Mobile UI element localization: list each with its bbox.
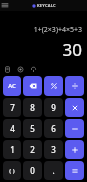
staticText: 0 <box>30 165 35 176</box>
button[interactable]: Percent <box>44 76 63 96</box>
button[interactable]: Multiply <box>65 98 84 117</box>
staticText: 6 <box>51 123 56 134</box>
button[interactable]: ( ) <box>3 161 21 180</box>
button[interactable]: Settings <box>29 65 38 74</box>
staticText: ( ) <box>9 167 15 175</box>
button[interactable]: Divide <box>65 76 84 96</box>
button[interactable]: . <box>44 161 63 180</box>
staticText: 30 <box>62 38 82 61</box>
button[interactable]: 4 <box>3 119 21 138</box>
button[interactable]: 1 <box>3 140 21 159</box>
staticText: 2 <box>30 144 35 155</box>
staticText: 1 <box>10 144 15 155</box>
button[interactable]: 7 <box>3 98 21 117</box>
staticText: 3 <box>51 144 56 155</box>
button[interactable]: 9 <box>44 98 63 117</box>
button[interactable]: History <box>3 65 12 74</box>
staticText: 1+(2×3)+4×5+3 <box>33 25 82 35</box>
button[interactable]: Minus <box>65 119 84 138</box>
button[interactable]: 3 <box>44 140 63 159</box>
staticText: KEYCALC <box>37 3 56 8</box>
button[interactable]: 0 <box>23 161 42 180</box>
staticText: 8 <box>30 102 35 113</box>
button[interactable]: All clear <box>3 76 21 96</box>
staticText: 9 <box>51 102 56 113</box>
button[interactable]: Equals <box>65 161 84 180</box>
button[interactable]: Theme <box>16 65 25 74</box>
staticText: 7 <box>10 102 15 113</box>
button[interactable]: 8 <box>23 98 42 117</box>
button[interactable]: 5 <box>23 119 42 138</box>
staticText: AC <box>8 82 16 90</box>
staticText: 4 <box>10 123 15 134</box>
button[interactable]: Plus <box>65 140 84 159</box>
staticText: 5 <box>30 123 35 134</box>
button[interactable]: 2 <box>23 140 42 159</box>
button[interactable]: 6 <box>44 119 63 138</box>
staticText: . <box>52 165 55 176</box>
button[interactable]: Backspace <box>23 76 42 96</box>
